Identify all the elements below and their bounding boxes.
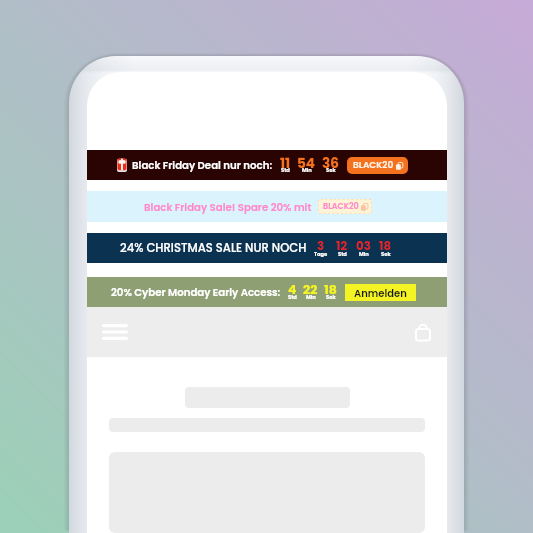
staticText: Std — [281, 167, 290, 174]
staticText: Std — [288, 294, 297, 301]
staticText: 03 — [356, 238, 371, 255]
staticText: 4 — [288, 281, 297, 298]
button[interactable]: Gift — [87, 150, 447, 180]
button[interactable]: 24% CHRISTMAS SALE NUR NOCH — [87, 233, 447, 263]
button[interactable]: Menu — [98, 315, 132, 349]
other: Gift — [117, 158, 127, 172]
staticText: 12 — [336, 238, 348, 255]
staticText: BLACK20 — [323, 201, 359, 212]
button[interactable]: 20% Cyber Monday Early Access: — [87, 277, 447, 307]
staticText: 20% Cyber Monday Early Access: — [111, 285, 281, 299]
staticText: Min — [306, 294, 316, 301]
staticText: Sek — [326, 167, 336, 174]
staticText: 54 — [297, 154, 316, 173]
button[interactable]: Black Friday Sale! Spare 20% mit — [87, 191, 447, 222]
staticText: 36 — [322, 154, 339, 173]
staticText: 24% CHRISTMAS SALE NUR NOCH — [120, 240, 307, 256]
staticText: 22 — [303, 281, 318, 298]
staticText: 11 — [280, 154, 291, 173]
staticText: 3 — [317, 238, 325, 255]
staticText: Sek — [381, 251, 391, 258]
button[interactable]: Shopping bag — [406, 315, 440, 349]
staticText: Anmelden — [354, 286, 407, 300]
button[interactable]: BLACK20 — [347, 157, 408, 174]
staticText: 18 — [324, 281, 337, 298]
staticText: Black Friday Sale! Spare 20% mit — [144, 200, 312, 214]
staticText: Std — [338, 251, 347, 258]
staticText: Min — [359, 251, 369, 258]
button[interactable]: BLACK20 — [318, 199, 372, 214]
staticText: Min — [302, 167, 312, 174]
staticText: Tage — [314, 251, 328, 258]
staticText: 18 — [379, 238, 392, 255]
staticText: BLACK20 — [353, 159, 394, 172]
staticText: Black Friday Deal nur noch: — [132, 158, 273, 172]
staticText: Sek — [326, 294, 336, 301]
button[interactable]: Anmelden — [345, 284, 416, 301]
